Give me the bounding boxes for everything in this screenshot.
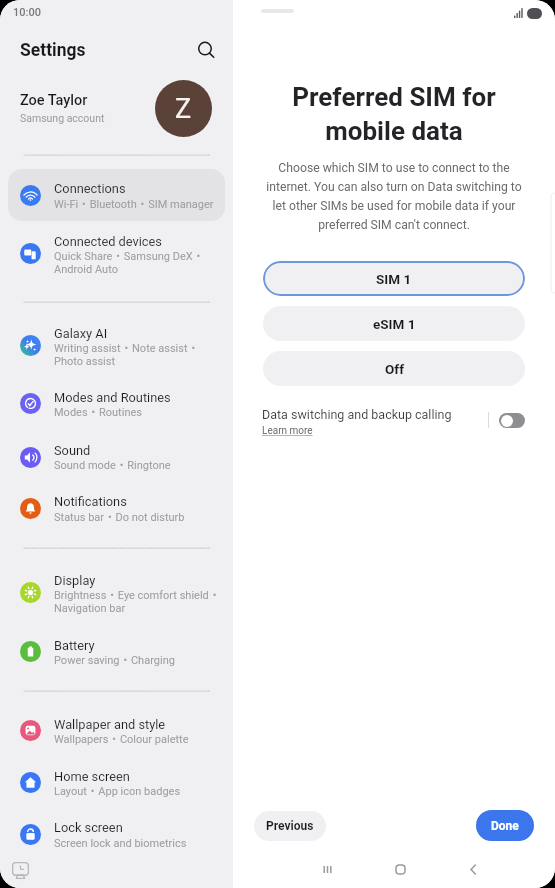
staticText: 10:00 [13, 6, 41, 19]
staticText: Modes • Routines [54, 406, 232, 419]
button[interactable]: Done [476, 810, 534, 841]
staticText: Sound mode • Ringtone [54, 459, 232, 472]
button[interactable] [8, 171, 225, 221]
button[interactable] [8, 810, 225, 860]
staticText: Modes and Routines [54, 390, 229, 405]
button[interactable]: Search [192, 36, 220, 64]
staticText: Zoe Taylor [20, 92, 88, 109]
staticText: Status bar • Do not disturb [54, 511, 232, 524]
staticText: Settings [20, 40, 86, 61]
staticText: Quick Share • Samsung DeX • Android Auto [54, 250, 232, 276]
button[interactable]: Learn more [262, 425, 313, 437]
staticText: Galaxy AI [54, 326, 229, 341]
staticText: Samsung account [20, 112, 105, 124]
button[interactable]: Recent apps [313, 855, 341, 883]
button[interactable] [8, 627, 225, 677]
button[interactable]: Off [263, 351, 525, 386]
button[interactable]: Back [459, 855, 487, 883]
staticText: Power saving • Charging [54, 654, 232, 667]
staticText: eSIM 1 [373, 316, 416, 332]
staticText: Done [491, 819, 519, 833]
staticText: Off [385, 361, 404, 377]
staticText: SIM 1 [376, 271, 412, 287]
staticText: Sound [54, 443, 229, 458]
staticText: Display [54, 573, 229, 588]
button[interactable] [8, 568, 225, 618]
staticText: Battery [54, 638, 229, 653]
staticText: Wi-Fi • Bluetooth • SIM manager [54, 198, 232, 211]
staticText: Notifications [54, 494, 229, 509]
button[interactable] [8, 320, 225, 370]
button[interactable]: SIM 1 [263, 261, 525, 296]
staticText: Data switching and backup calling [262, 407, 452, 422]
staticText: Preferred SIM for mobile data [259, 82, 529, 146]
staticText: Screen lock and biometrics [54, 837, 232, 850]
button[interactable]: Data switching toggle [499, 413, 525, 428]
staticText: Layout • App icon badges [54, 785, 232, 798]
button[interactable] [8, 484, 225, 534]
staticText: Connections [54, 181, 229, 196]
staticText: Lock screen [54, 820, 229, 835]
staticText: Previous [266, 819, 314, 833]
button[interactable] [8, 758, 225, 808]
staticText: Wallpaper and style [54, 717, 229, 732]
button[interactable]: Zoe Taylor [0, 78, 233, 138]
button[interactable] [8, 379, 225, 429]
staticText: Writing assist • Note assist • Photo ass… [54, 342, 232, 368]
button[interactable] [8, 229, 225, 279]
staticText: Home screen [54, 769, 229, 784]
staticText: Z [175, 93, 192, 125]
staticText: Choose which SIM to use to connect to th… [263, 161, 525, 232]
button[interactable] [8, 432, 225, 482]
staticText: Brightness • Eye comfort shield • Naviga… [54, 589, 232, 615]
button[interactable]: Home [386, 855, 414, 883]
button[interactable]: eSIM 1 [263, 306, 525, 341]
button[interactable] [8, 706, 225, 756]
staticText: Wallpapers • Colour palette [54, 733, 232, 746]
staticText: Connected devices [54, 234, 229, 249]
button[interactable]: Previous [254, 811, 326, 841]
button[interactable]: Screen time [12, 862, 29, 879]
